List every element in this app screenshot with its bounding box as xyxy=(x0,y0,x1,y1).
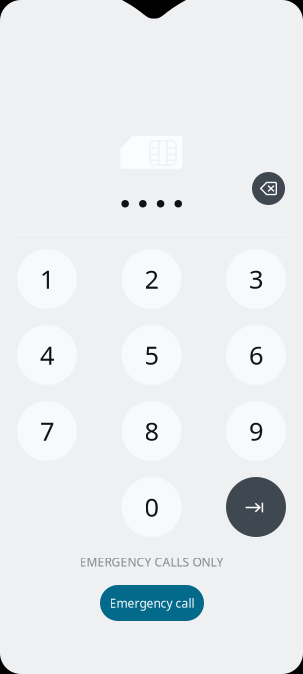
staticText: 1 xyxy=(40,262,54,296)
button[interactable]: Submit PIN xyxy=(226,477,286,537)
staticText: 5 xyxy=(144,338,158,372)
button[interactable]: Delete xyxy=(252,172,285,205)
staticText: 0 xyxy=(144,490,158,524)
staticText: 8 xyxy=(144,414,158,448)
staticText: EMERGENCY CALLS ONLY xyxy=(79,554,223,570)
button[interactable]: 6 xyxy=(226,325,286,385)
staticText: 9 xyxy=(249,414,263,448)
button[interactable]: 5 xyxy=(121,325,181,385)
button[interactable]: 3 xyxy=(226,249,286,309)
button[interactable]: 9 xyxy=(226,401,286,461)
staticText: 4 xyxy=(40,338,54,372)
button[interactable]: 0 xyxy=(121,477,181,537)
button[interactable]: 1 xyxy=(17,249,77,309)
staticText: 2 xyxy=(144,262,158,296)
button[interactable]: 2 xyxy=(121,249,181,309)
button[interactable]: 8 xyxy=(121,401,181,461)
button[interactable]: Emergency call xyxy=(100,585,204,621)
button[interactable]: 4 xyxy=(17,325,77,385)
staticText: Emergency call xyxy=(109,595,194,611)
staticText: 7 xyxy=(40,414,54,448)
button[interactable]: 7 xyxy=(17,401,77,461)
staticText: 6 xyxy=(249,338,263,372)
staticText: 3 xyxy=(249,262,263,296)
